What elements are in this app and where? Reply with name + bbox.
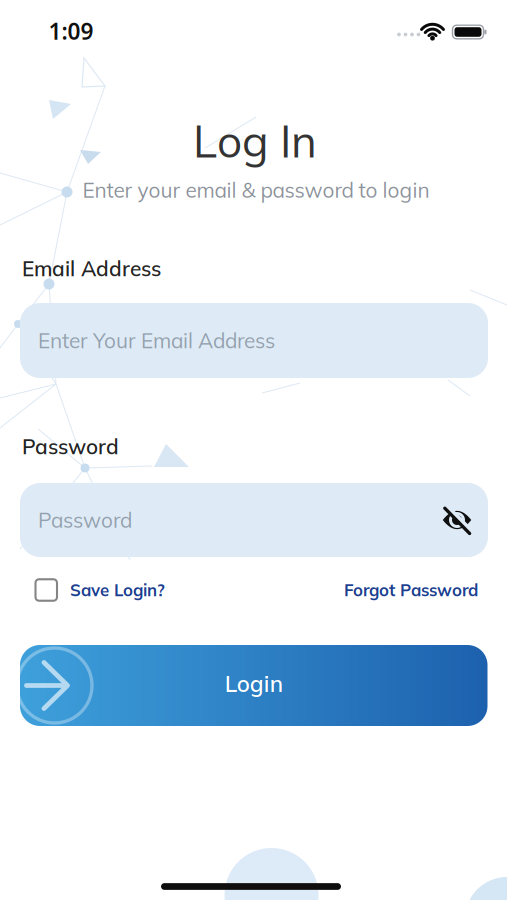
- staticText: Password: [22, 433, 119, 459]
- staticText: Password: [38, 507, 132, 533]
- staticText: Enter Your Email Address: [38, 327, 275, 353]
- staticText: Enter your email & password to login: [82, 177, 429, 203]
- button[interactable]: Forgot Password: [344, 579, 478, 601]
- button[interactable]: Save Login?: [35, 579, 165, 601]
- staticText: Forgot Password: [344, 579, 478, 601]
- staticText: 1:09: [48, 16, 93, 46]
- staticText: Save Login?: [70, 579, 165, 601]
- staticText: Email Address: [22, 255, 161, 281]
- button[interactable]: Enter Your Email Address: [20, 303, 488, 378]
- staticText: Login: [225, 669, 283, 698]
- button[interactable]: Login: [20, 645, 487, 726]
- button[interactable]: [437, 502, 477, 538]
- staticText: Log In: [193, 113, 317, 169]
- button[interactable]: Password: [20, 483, 488, 557]
